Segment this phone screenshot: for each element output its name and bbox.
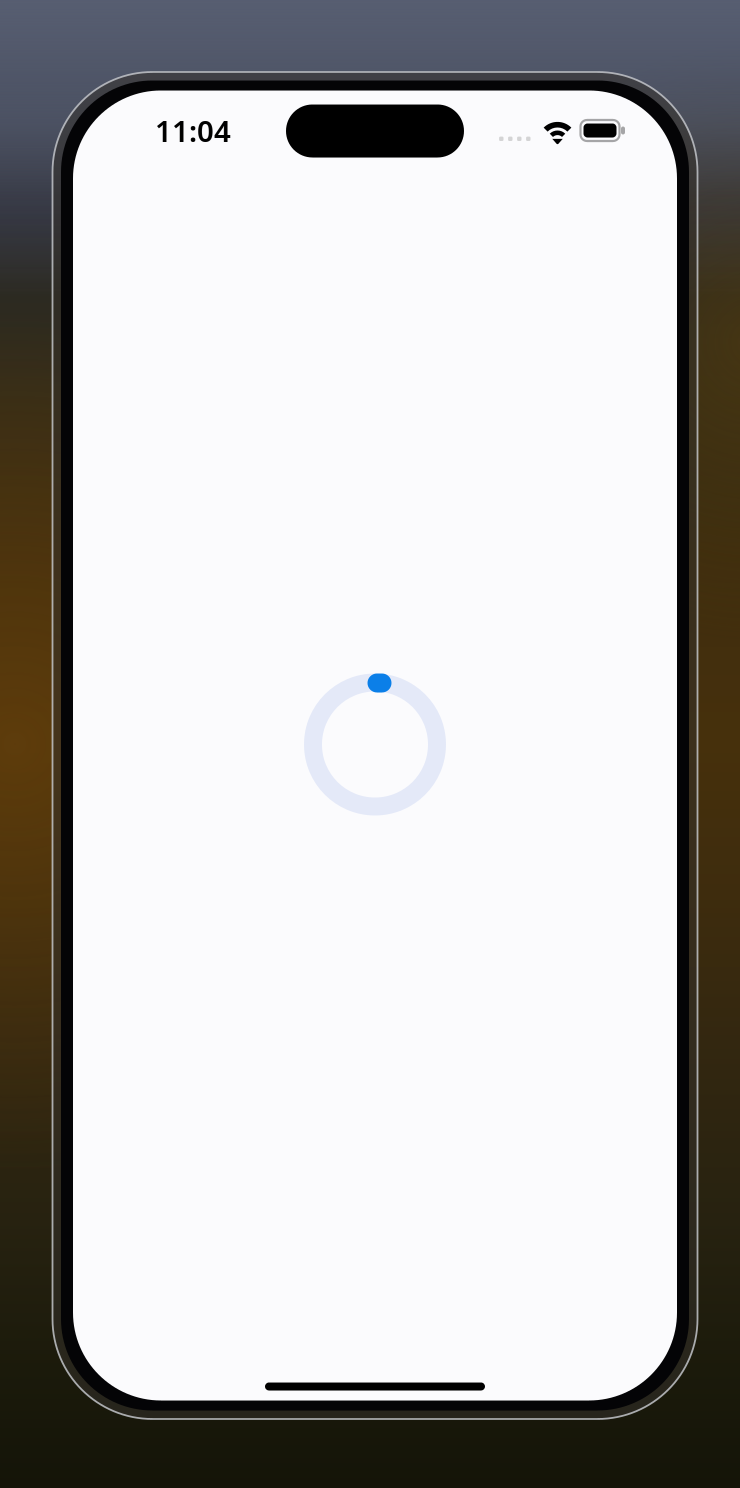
staticText: 11:04	[155, 111, 231, 150]
